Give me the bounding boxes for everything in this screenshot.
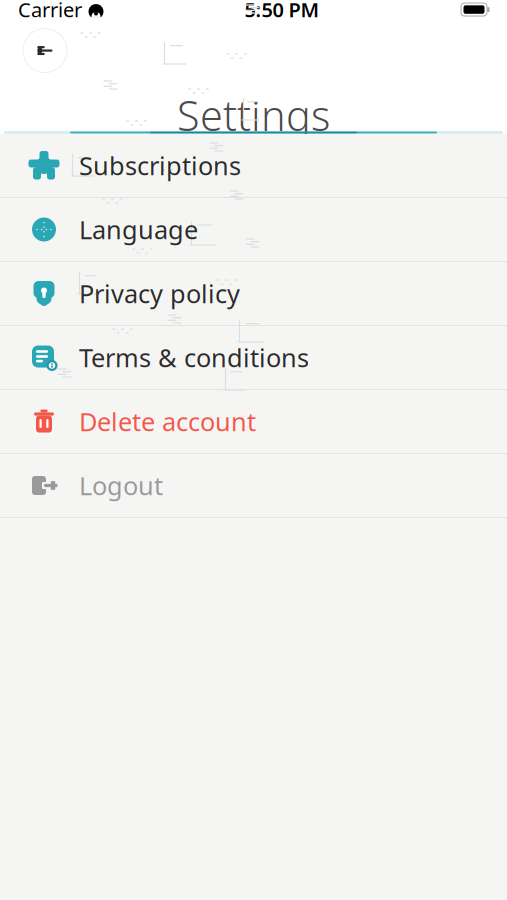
staticText: 5:50 PM xyxy=(244,0,319,23)
staticText: Settings xyxy=(177,88,330,142)
staticText: Subscriptions xyxy=(79,149,241,182)
staticText: Delete account xyxy=(79,405,256,438)
staticText: Privacy policy xyxy=(79,277,240,310)
staticText: Carrier xyxy=(18,0,82,23)
staticText: Language xyxy=(79,213,198,246)
staticText: Logout xyxy=(79,469,163,502)
button[interactable]: Delete account xyxy=(0,390,507,453)
button[interactable]: Subscriptions xyxy=(0,134,507,197)
button[interactable]: Logout xyxy=(0,454,507,517)
button[interactable]: Back xyxy=(20,26,70,76)
button[interactable]: Language xyxy=(0,198,507,261)
button[interactable]: Privacy policy xyxy=(0,262,507,325)
staticText: Terms & conditions xyxy=(79,341,309,374)
button[interactable]: Terms & conditions xyxy=(0,326,507,389)
